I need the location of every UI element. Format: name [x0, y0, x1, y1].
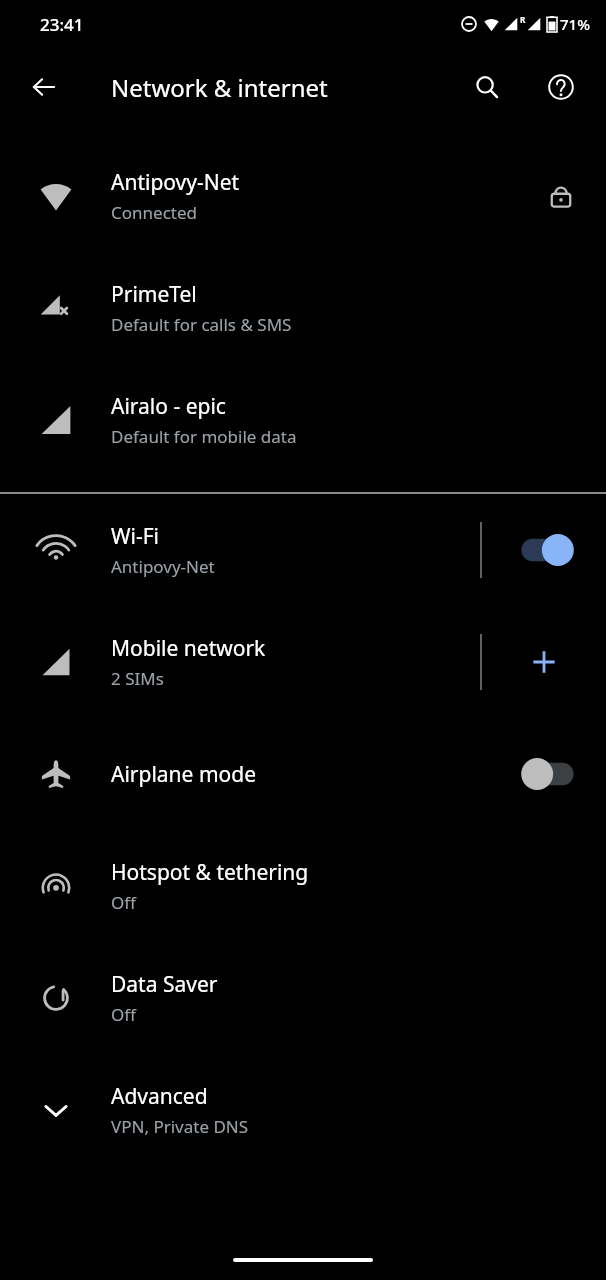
button[interactable]: Mobile network	[0, 606, 606, 718]
staticText: R	[520, 14, 526, 25]
staticText: Off	[111, 1003, 136, 1026]
staticText: 2 SIMs	[111, 667, 164, 690]
staticText: Network & internet	[111, 71, 328, 104]
staticText: VPN, Private DNS	[111, 1115, 249, 1138]
staticText: Connected	[111, 201, 197, 224]
staticText: Antipovy-Net	[111, 555, 215, 578]
staticText: Mobile network	[111, 634, 266, 663]
button[interactable]: Toggle on	[513, 529, 575, 571]
button[interactable]: PrimeTel	[0, 252, 606, 364]
button[interactable]: Airalo - epic	[0, 364, 606, 476]
button[interactable]: Add SIM	[519, 637, 569, 687]
staticText: Hotspot & tethering	[111, 858, 309, 887]
button[interactable]: Airplane mode	[0, 718, 606, 830]
staticText: Antipovy-Net	[111, 168, 240, 197]
staticText: Wi-Fi	[111, 522, 160, 551]
button[interactable]: Help	[538, 64, 584, 110]
staticText: Default for mobile data	[111, 425, 297, 448]
staticText: Advanced	[111, 1082, 208, 1111]
staticText: 71%	[560, 14, 590, 34]
staticText: Airplane mode	[111, 760, 257, 789]
staticText: Default for calls & SMS	[111, 313, 292, 336]
staticText: Data Saver	[111, 970, 218, 999]
button[interactable]: Hotspot & tethering	[0, 830, 606, 942]
button[interactable]: Back	[22, 65, 66, 109]
staticText: Off	[111, 891, 136, 914]
button[interactable]: Toggle off	[520, 753, 582, 795]
other: Secured network	[547, 182, 575, 210]
staticText: Airalo - epic	[111, 392, 226, 421]
button[interactable]: Antipovy-Net	[0, 140, 606, 252]
button[interactable]: Wi-Fi	[0, 494, 606, 606]
button[interactable]: Search	[464, 64, 510, 110]
staticText: PrimeTel	[111, 280, 197, 309]
staticText: 23:41	[40, 13, 84, 36]
button[interactable]: Data Saver	[0, 942, 606, 1054]
button[interactable]: Advanced	[0, 1054, 606, 1166]
